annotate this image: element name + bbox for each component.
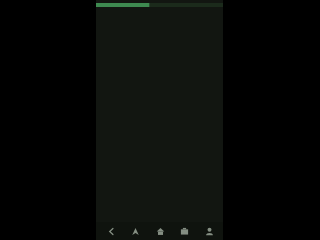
button[interactable]: Home bbox=[150, 222, 170, 240]
button[interactable]: Back bbox=[101, 222, 121, 240]
button[interactable]: Navigation bbox=[125, 222, 145, 240]
button[interactable]: Profile bbox=[199, 222, 219, 240]
button[interactable]: Saved bbox=[174, 222, 194, 240]
